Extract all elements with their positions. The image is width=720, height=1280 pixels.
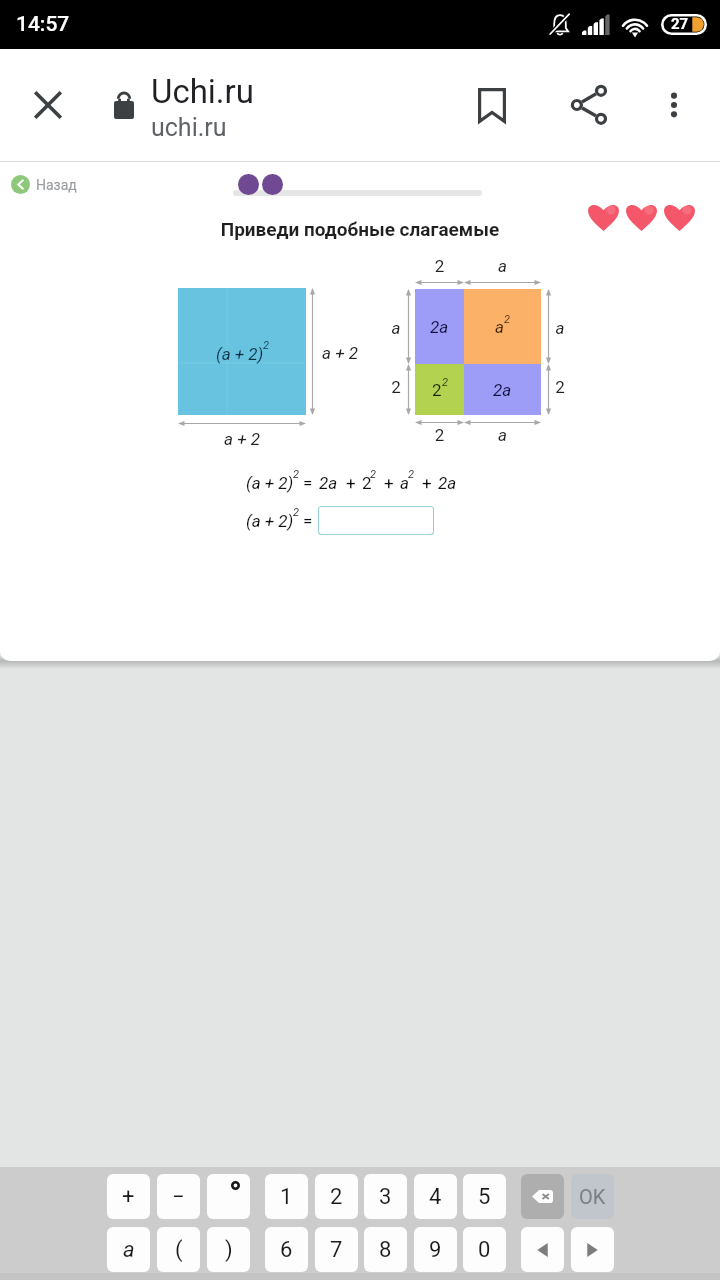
- button[interactable]: Close: [14, 71, 81, 138]
- button[interactable]: Move right: [571, 1227, 614, 1272]
- staticText: 3: [379, 1184, 392, 1210]
- staticText: a: [495, 317, 504, 337]
- staticText: 8: [379, 1237, 392, 1263]
- staticText: Uchi.ru: [151, 72, 254, 111]
- staticText: 4: [429, 1184, 442, 1210]
- staticText: 2: [408, 468, 414, 481]
- staticText: +: [346, 473, 356, 493]
- staticText: 2: [293, 468, 299, 481]
- button[interactable]: Share: [555, 71, 622, 138]
- staticText: (a + 2): [246, 511, 294, 531]
- staticText: 14:57: [16, 12, 70, 37]
- button[interactable]: 7: [315, 1227, 358, 1272]
- button[interactable]: 6: [265, 1227, 308, 1272]
- staticText: 7: [330, 1237, 343, 1263]
- staticText: 2a: [493, 380, 512, 400]
- staticText: Приведи подобные слагаемые: [0, 218, 720, 240]
- staticText: 2: [386, 377, 406, 397]
- staticText: a: [386, 318, 406, 338]
- staticText: 2: [370, 468, 376, 481]
- staticText: 2a: [430, 317, 449, 337]
- staticText: uchi.ru: [151, 113, 227, 142]
- button[interactable]: a: [107, 1227, 150, 1272]
- staticText: a: [464, 425, 541, 445]
- staticText: 2: [432, 380, 442, 400]
- staticText: Назад: [36, 177, 77, 193]
- staticText: 2: [550, 377, 570, 397]
- staticText: 6: [280, 1237, 293, 1263]
- staticText: 2: [442, 376, 448, 389]
- staticText: 5: [478, 1184, 491, 1210]
- staticText: a: [400, 473, 409, 493]
- button[interactable]: Backspace: [521, 1174, 564, 1219]
- staticText: (: [175, 1237, 183, 1263]
- staticText: 2: [263, 339, 269, 352]
- button[interactable]: −: [157, 1174, 200, 1219]
- staticText: 2a: [438, 473, 457, 493]
- staticText: 2: [362, 473, 372, 493]
- button[interactable]: 5: [463, 1174, 506, 1219]
- button[interactable]: 9: [414, 1227, 457, 1272]
- staticText: =: [303, 473, 313, 493]
- button[interactable]: 4: [414, 1174, 457, 1219]
- button[interactable]: +: [107, 1174, 150, 1219]
- staticText: 2: [415, 425, 464, 445]
- staticText: 1: [280, 1184, 293, 1210]
- button[interactable]: ): [207, 1227, 250, 1272]
- staticText: +: [122, 1184, 135, 1210]
- staticText: (a + 2): [246, 473, 294, 493]
- button[interactable]: Move left: [521, 1227, 564, 1272]
- staticText: 2: [293, 506, 299, 519]
- staticText: a + 2: [178, 429, 306, 449]
- button[interactable]: 8: [364, 1227, 407, 1272]
- staticText: a: [550, 318, 570, 338]
- button[interactable]: 2: [315, 1174, 358, 1219]
- button[interactable]: OK: [571, 1174, 614, 1219]
- staticText: 27: [671, 15, 689, 33]
- staticText: a + 2: [322, 343, 358, 363]
- staticText: 2: [330, 1184, 343, 1210]
- staticText: a: [123, 1237, 135, 1263]
- staticText: −: [172, 1184, 185, 1210]
- button[interactable]: 3: [364, 1174, 407, 1219]
- staticText: 2: [504, 313, 510, 326]
- staticText: =: [303, 511, 313, 531]
- button[interactable]: Answer field: [318, 506, 434, 535]
- staticText: +: [384, 473, 394, 493]
- button[interactable]: [207, 1174, 250, 1219]
- button[interactable]: 1: [265, 1174, 308, 1219]
- button[interactable]: More options: [640, 71, 707, 138]
- button[interactable]: Назад: [7, 171, 81, 198]
- staticText: ): [225, 1237, 233, 1263]
- staticText: +: [422, 473, 432, 493]
- staticText: a: [464, 256, 541, 276]
- button[interactable]: Bookmark: [458, 72, 525, 139]
- staticText: 0: [478, 1237, 491, 1263]
- staticText: 9: [429, 1237, 442, 1263]
- staticText: 2: [415, 256, 464, 276]
- button[interactable]: 0: [463, 1227, 506, 1272]
- button[interactable]: (: [157, 1227, 200, 1272]
- staticText: 2a: [319, 473, 338, 493]
- staticText: OK: [579, 1185, 606, 1208]
- staticText: (a + 2): [216, 344, 264, 364]
